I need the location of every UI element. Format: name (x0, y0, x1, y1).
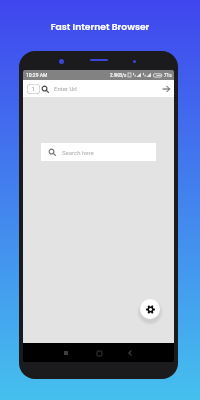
staticText: Fast Internet Browser (0, 20, 200, 33)
button[interactable]: Settings (140, 299, 160, 319)
button[interactable]: Home (91, 345, 107, 361)
button[interactable]: Recents (58, 345, 74, 361)
staticText: 2.9KB/s (110, 73, 127, 78)
button[interactable]: Go (160, 83, 171, 94)
button[interactable]: Tabs (27, 84, 40, 94)
staticText: 71s (164, 73, 172, 78)
button[interactable]: Back (122, 345, 138, 361)
staticText: 10:29 AM (26, 72, 48, 78)
staticText: Enter Url (54, 85, 77, 92)
staticText: Search here (62, 149, 94, 156)
staticText: 1 (32, 86, 35, 92)
button[interactable]: Search here (41, 143, 156, 161)
